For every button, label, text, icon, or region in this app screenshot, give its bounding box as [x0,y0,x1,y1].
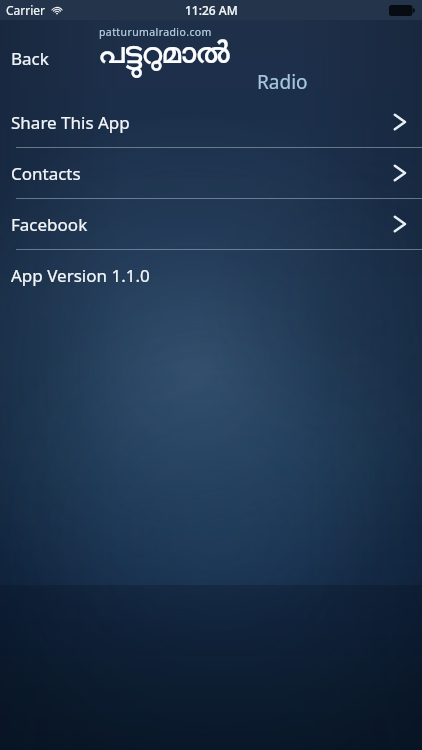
button[interactable]: App Version 1.1.0 [0,250,422,300]
staticText: Facebook [11,213,88,236]
other: Battery [389,5,415,16]
staticText: Radio [257,69,308,95]
staticText: Contacts [11,162,81,185]
button[interactable]: Facebook [0,199,422,249]
button[interactable]: Back [3,39,57,78]
staticText: patturumalradio.com [99,25,212,39]
staticText: Share This App [11,111,130,134]
staticText: പട്ടുറുമാല്‍ [99,39,230,69]
staticText: Back [11,47,49,70]
button[interactable]: Share This App [0,97,422,147]
button[interactable]: Contacts [0,148,422,198]
staticText: Carrier [6,2,46,18]
staticText: 11:26 AM [185,2,238,18]
staticText: App Version 1.1.0 [11,264,150,287]
